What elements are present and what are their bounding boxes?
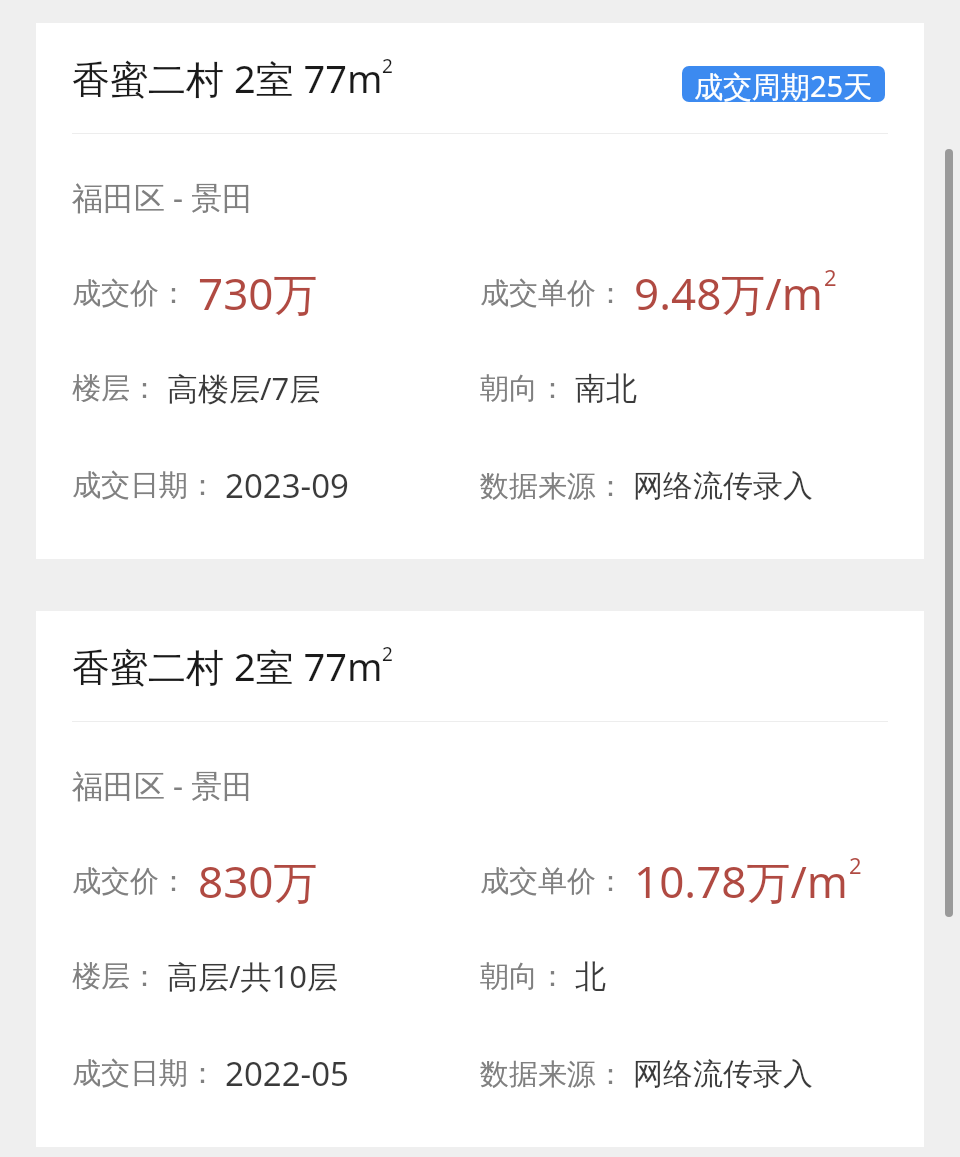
staticText: 成交价： (72, 275, 188, 312)
staticText: 成交日期： (72, 467, 217, 504)
staticText: 成交单价： (480, 275, 625, 312)
staticText: 2023-09 (225, 463, 349, 508)
staticText: 成交价： (72, 863, 188, 900)
staticText: 福田区 - 景田 (72, 176, 254, 218)
other: Scroll position (945, 149, 953, 917)
staticText: 成交日期： (72, 1055, 217, 1092)
staticText: 香蜜二村 2室 77m (72, 52, 383, 104)
staticText: 楼层： (72, 370, 159, 407)
staticText: 福田区 - 景田 (72, 764, 254, 806)
staticText: 成交单价： (480, 863, 625, 900)
button[interactable]: 成交周期25天 (682, 66, 885, 102)
staticText: 数据来源： (480, 468, 625, 505)
staticText: 南北 (575, 369, 637, 408)
staticText: 2022-05 (225, 1051, 349, 1096)
staticText: 730万 (198, 263, 318, 323)
staticText: 2 (382, 53, 393, 79)
staticText: 北 (575, 957, 606, 996)
staticText: 香蜜二村 2室 77m (72, 640, 383, 692)
staticText: 高楼层/7层 (167, 367, 321, 409)
button[interactable]: 香蜜二村 2室 77m (36, 23, 924, 559)
staticText: 9.48万/m (634, 263, 823, 323)
staticText: 高层/共10层 (167, 955, 338, 997)
staticText: 网络流传录入 (633, 467, 813, 505)
staticText: 数据来源： (480, 1056, 625, 1093)
staticText: 10.78万/m (634, 851, 848, 911)
staticText: 朝向： (480, 958, 567, 995)
staticText: 楼层： (72, 958, 159, 995)
staticText: 成交周期25天 (694, 66, 873, 102)
staticText: 朝向： (480, 370, 567, 407)
staticText: 2 (824, 262, 837, 292)
staticText: 2 (382, 641, 393, 667)
staticText: 2 (849, 850, 862, 880)
button[interactable]: 香蜜二村 2室 77m (36, 611, 924, 1147)
staticText: 网络流传录入 (633, 1055, 813, 1093)
staticText: 830万 (198, 851, 318, 911)
